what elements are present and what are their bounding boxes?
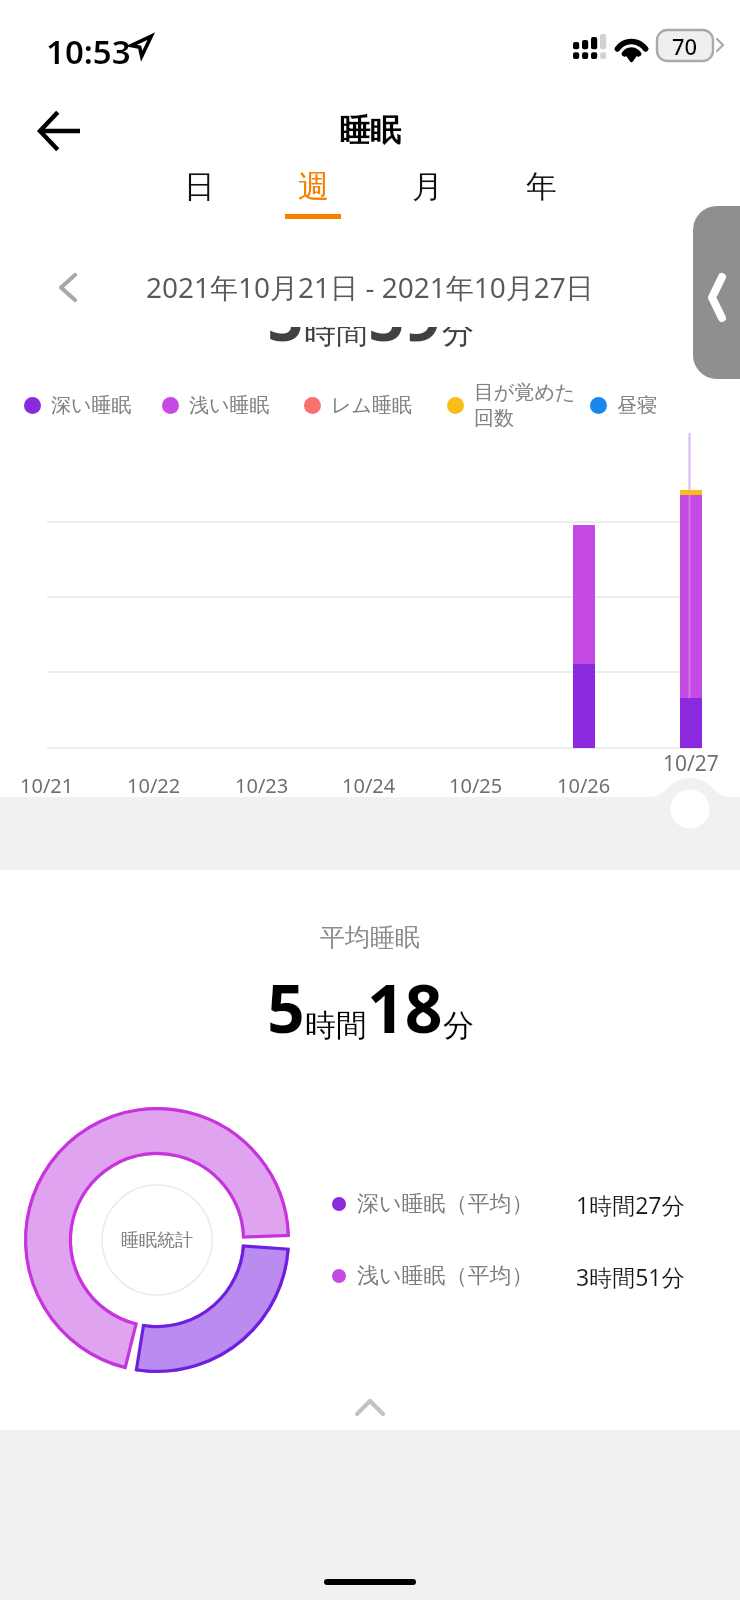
staticText: 昼寝: [617, 393, 657, 418]
button[interactable]: 年: [484, 163, 598, 223]
button[interactable]: Back: [22, 98, 94, 163]
staticText: 分: [443, 1006, 474, 1045]
staticText: 週: [298, 167, 329, 206]
button[interactable]: 深い睡眠（平均）: [328, 1181, 700, 1227]
staticText: 平均睡眠: [0, 922, 740, 953]
staticText: 10/24: [342, 772, 396, 799]
staticText: 10/27: [663, 749, 719, 778]
staticText: 浅い睡眠: [189, 393, 270, 418]
button[interactable]: Collapse: [0, 1385, 740, 1430]
staticText: 70: [672, 31, 698, 61]
staticText: 日: [184, 167, 215, 206]
staticText: 年: [526, 167, 557, 206]
staticText: 睡眠: [339, 111, 401, 150]
button[interactable]: Previous week: [42, 263, 90, 311]
staticText: 1時間27分: [576, 1189, 685, 1220]
staticText: 月: [412, 167, 443, 206]
staticText: 10/25: [449, 772, 503, 799]
staticText: 時間: [304, 312, 368, 352]
staticText: 2021年10月21日 - 2021年10月27日: [146, 268, 594, 306]
staticText: 時間: [305, 1006, 367, 1045]
staticText: 5: [267, 273, 304, 360]
staticText: 深い睡眠: [51, 393, 132, 418]
staticText: 59: [368, 273, 442, 360]
button[interactable]: 浅い睡眠（平均）: [328, 1253, 700, 1299]
staticText: 深い睡眠（平均）: [357, 1190, 534, 1218]
staticText: 18: [367, 962, 443, 1052]
button[interactable]: Open side panel: [693, 206, 740, 379]
staticText: 10:53: [46, 29, 131, 74]
button[interactable]: 日: [142, 163, 256, 223]
staticText: 浅い睡眠（平均）: [357, 1262, 534, 1290]
staticText: 5: [267, 962, 305, 1052]
staticText: 10/23: [235, 772, 289, 799]
staticText: 3時間51分: [576, 1261, 685, 1292]
button[interactable]: 月: [370, 163, 484, 223]
staticText: 睡眠統計: [121, 1229, 193, 1252]
staticText: 目が覚めた 回数: [474, 380, 576, 430]
staticText: 10/21: [20, 772, 74, 799]
staticText: 10/26: [557, 772, 611, 799]
staticText: 分: [442, 312, 474, 352]
button[interactable]: 週: [256, 163, 370, 223]
staticText: レム睡眠: [331, 393, 412, 418]
staticText: 10/22: [127, 772, 181, 799]
